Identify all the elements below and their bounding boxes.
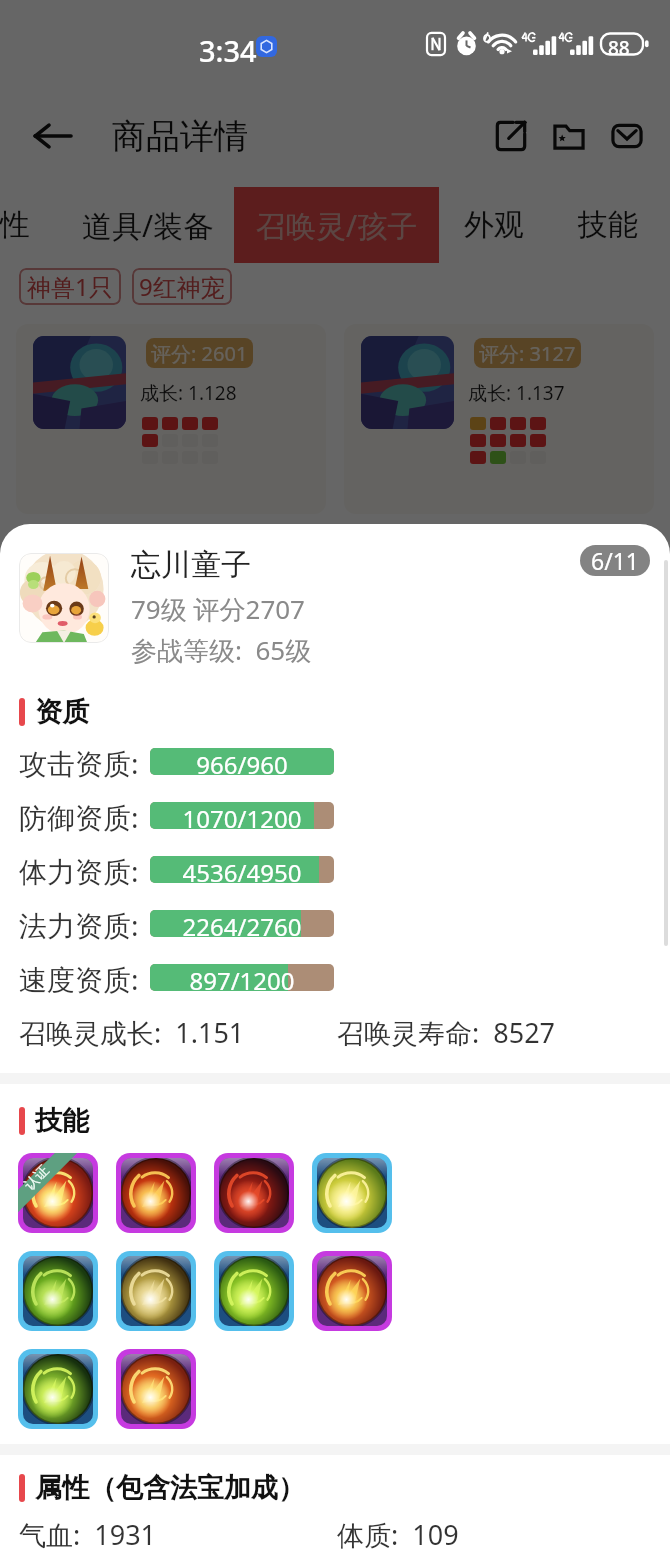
staticText: 技能 [35, 1104, 89, 1138]
staticText: 攻击资质: [19, 744, 139, 782]
button[interactable]: Skill [214, 1153, 294, 1233]
button[interactable]: Skill [18, 1153, 98, 1233]
button[interactable]: Skill [18, 1349, 98, 1429]
button[interactable]: Share [482, 107, 540, 165]
button[interactable]: Skill [116, 1153, 196, 1233]
staticText: 体质: 109 [337, 1516, 459, 1553]
staticText: 技能 [578, 206, 638, 244]
staticText: 认证 [21, 1162, 53, 1194]
staticText: 外观 [464, 206, 524, 244]
button[interactable]: Skill [312, 1153, 392, 1233]
button[interactable]: Favorites [540, 107, 598, 165]
button[interactable]: 评分: 2601 [16, 324, 326, 514]
staticText: 2264/2760 [150, 910, 334, 937]
button[interactable]: 神兽1只 [19, 268, 121, 305]
staticText: 1070/1200 [150, 802, 334, 829]
button[interactable]: Skill [214, 1251, 294, 1331]
button[interactable]: 9红神宠 [132, 268, 232, 305]
staticText: 9红神宠 [139, 270, 225, 303]
button[interactable]: 召唤灵/孩子 [234, 187, 439, 263]
staticText: 4536/4950 [150, 856, 334, 883]
button[interactable]: 评分: 3127 [344, 324, 654, 514]
button[interactable]: 道具/装备 [82, 205, 214, 246]
button[interactable]: 外观 [464, 206, 524, 244]
button[interactable]: Skill [18, 1251, 98, 1331]
staticText: 79级 评分2707 [131, 591, 305, 627]
staticText: 召唤灵寿命: 8527 [337, 1014, 556, 1051]
staticText: 防御资质: [19, 798, 139, 836]
staticText: 体力资质: [19, 852, 139, 890]
staticText: 神兽1只 [27, 270, 113, 303]
staticText: 88 [608, 35, 630, 61]
button[interactable]: 技能 [578, 206, 638, 244]
button[interactable]: Skill [116, 1349, 196, 1429]
staticText: 评分: 3127 [479, 340, 576, 367]
staticText: 成长: 1.128 [140, 380, 237, 406]
staticText: 忘川童子 [131, 546, 251, 584]
button[interactable]: 6/11 [580, 545, 650, 576]
staticText: 气血: 1931 [19, 1516, 157, 1553]
staticText: 897/1200 [150, 964, 334, 991]
staticText: 6/11 [591, 545, 640, 576]
button[interactable]: Messages [598, 107, 656, 165]
staticText: 商品详情 [112, 115, 248, 158]
staticText: 召唤灵/孩子 [256, 205, 418, 246]
button[interactable]: Back [22, 105, 84, 167]
staticText: 成长: 1.137 [468, 380, 565, 406]
staticText: 属性（包含法宝加成） [35, 1471, 305, 1505]
button[interactable]: Skill [116, 1251, 196, 1331]
button[interactable]: Skill [312, 1251, 392, 1331]
staticText: 参战等级: 65级 [131, 632, 312, 668]
staticText: 评分: 2601 [151, 340, 248, 367]
staticText: 速度资质: [19, 960, 139, 998]
staticText: 资质 [35, 695, 89, 729]
staticText: 性 [0, 206, 30, 244]
staticText: 召唤灵成长: 1.151 [19, 1014, 245, 1051]
staticText: 966/960 [150, 748, 334, 775]
staticText: 法力资质: [19, 906, 139, 944]
staticText: 3:34 [199, 31, 257, 70]
staticText: 道具/装备 [82, 205, 214, 246]
button[interactable]: Pet avatar [19, 553, 109, 643]
